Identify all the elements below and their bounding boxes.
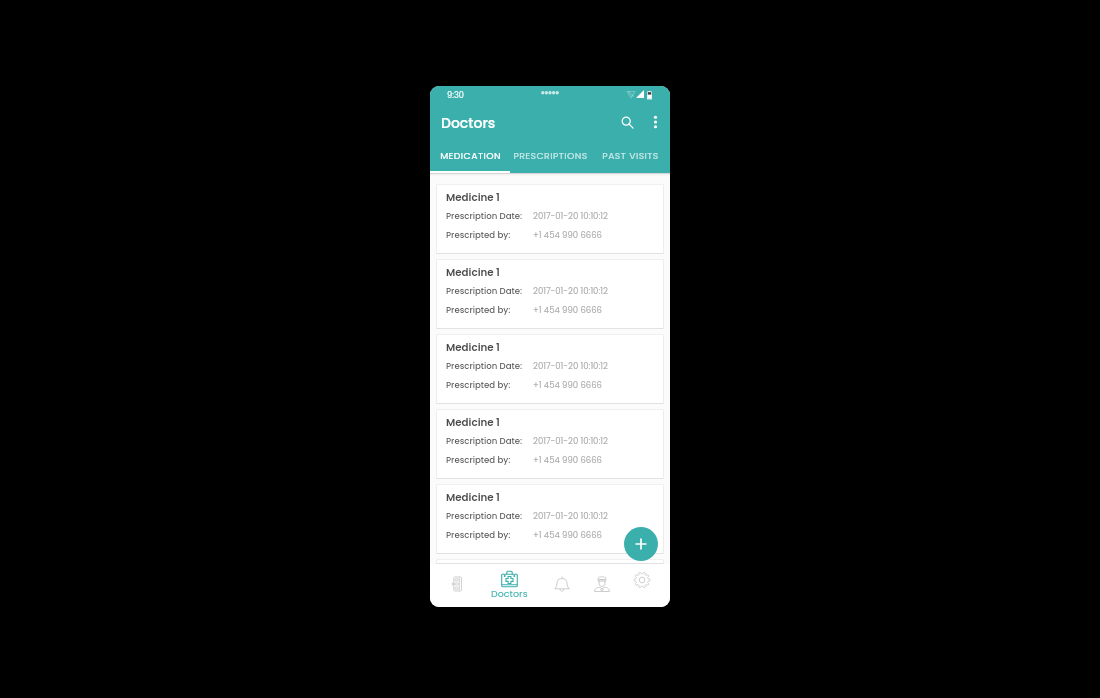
staticText: +1 454 990 6666 [533, 304, 603, 316]
staticText: Prescripted by: [446, 379, 533, 391]
staticText: Doctors [491, 587, 528, 600]
staticText: 2017-01-20 10:10:12 [533, 210, 608, 222]
staticText: Medicine 1 [446, 265, 500, 279]
staticText: Prescripted by: [446, 529, 533, 541]
staticText: 2017-01-20 10:10:12 [533, 435, 608, 447]
button[interactable]: PRESCRIPTIONS [510, 145, 590, 173]
button[interactable]: Add [624, 527, 658, 561]
button[interactable]: MEDICATION [430, 145, 510, 173]
staticText: Prescripted by: [446, 229, 533, 241]
button[interactable]: Medicine 1 [436, 484, 664, 554]
staticText: Medicine 1 [446, 340, 500, 354]
button[interactable]: Medicine 1 [436, 259, 664, 329]
staticText: Prescripted by: [446, 304, 533, 316]
button[interactable]: Doctors [487, 564, 531, 607]
button[interactable]: PAST VISITS [590, 145, 670, 173]
staticText: +1 454 990 6666 [533, 379, 603, 391]
button[interactable]: Medication [437, 564, 477, 607]
staticText: Doctors [441, 113, 496, 133]
staticText: MEDICATION [440, 149, 501, 162]
staticText: Prescription Date: [446, 285, 533, 297]
staticText: 2017-01-20 10:10:12 [533, 360, 608, 372]
staticText: PAST VISITS [602, 149, 659, 162]
button[interactable]: Medicine 1 [436, 334, 664, 404]
staticText: Prescripted by: [446, 454, 533, 466]
staticText: Medicine 1 [446, 415, 500, 429]
staticText: Prescription Date: [446, 210, 533, 222]
staticText: Prescription Date: [446, 435, 533, 447]
button[interactable]: Medicine 1 [436, 184, 664, 254]
staticText: +1 454 990 6666 [533, 529, 603, 541]
staticText: +1 454 990 6666 [533, 229, 603, 241]
button[interactable]: Settings [623, 564, 661, 607]
staticText: Medicine 1 [446, 490, 500, 504]
staticText: Medicine 1 [446, 190, 500, 204]
staticText: Prescription Date: [446, 360, 533, 372]
button[interactable]: More options [644, 111, 666, 133]
button[interactable]: Medicine 1 [436, 409, 664, 479]
staticText: 2017-01-20 10:10:12 [533, 285, 608, 297]
staticText: 2017-01-20 10:10:12 [533, 510, 608, 522]
staticText: PRESCRIPTIONS [513, 149, 588, 162]
staticText: +1 454 990 6666 [533, 454, 603, 466]
button[interactable]: Medicine 1 [436, 559, 664, 564]
button[interactable]: Notifications [542, 564, 582, 607]
staticText: 9:30 [447, 89, 464, 100]
button[interactable]: Search [616, 111, 638, 133]
button[interactable]: Profile [583, 564, 621, 607]
staticText: Prescription Date: [446, 510, 533, 522]
